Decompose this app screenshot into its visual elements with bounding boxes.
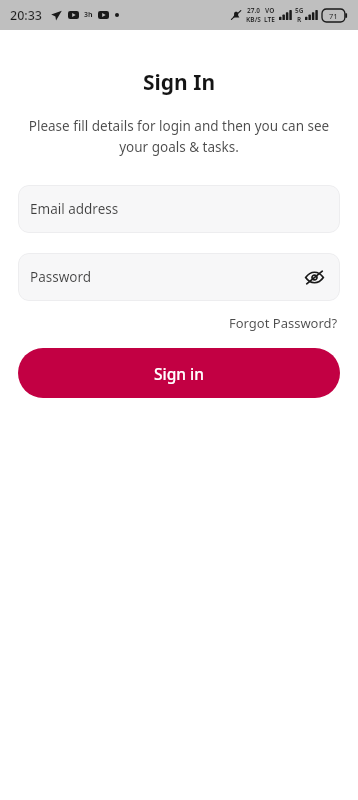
staticText: Email address	[30, 200, 328, 218]
staticText: 27.0	[247, 6, 260, 15]
staticText: 5G	[295, 6, 304, 15]
staticText: Sign in	[154, 363, 204, 384]
staticText: Please fill details for login and then y…	[16, 117, 342, 156]
button[interactable]: Show password	[300, 263, 328, 291]
staticText: LTE	[264, 15, 275, 24]
staticText: 3h	[84, 10, 93, 20]
staticText: 71	[329, 11, 338, 21]
staticText: VO	[265, 6, 275, 15]
button[interactable]: Password	[18, 253, 340, 301]
staticText: Password	[30, 268, 300, 286]
staticText: R	[297, 15, 302, 24]
button[interactable]: Email address	[18, 185, 340, 233]
staticText: KB/S	[246, 15, 261, 24]
staticText: 20:33	[10, 7, 43, 24]
button[interactable]: Forgot Password?	[227, 312, 340, 334]
staticText: Forgot Password?	[229, 314, 338, 332]
staticText: Sign In	[0, 68, 358, 97]
button[interactable]: Sign in	[18, 348, 340, 398]
